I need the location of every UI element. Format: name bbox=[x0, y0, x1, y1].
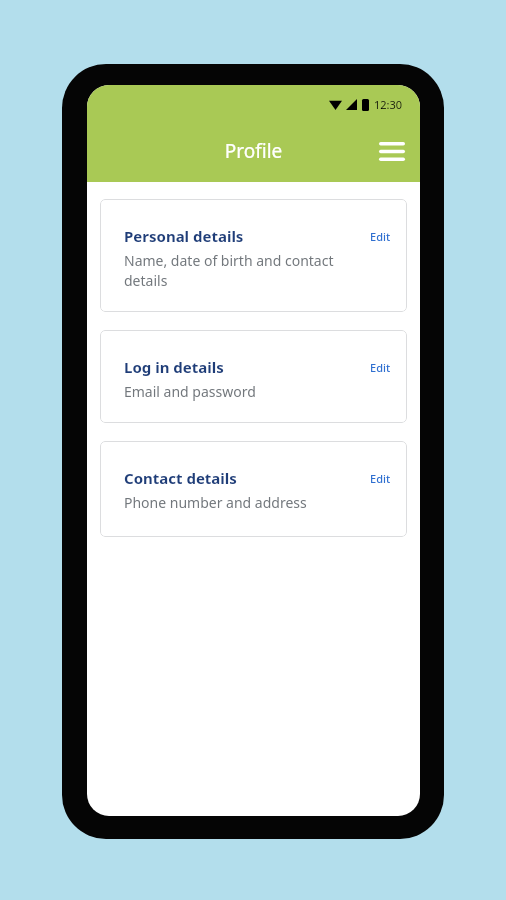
staticText: Edit bbox=[370, 360, 391, 375]
staticText: Phone number and address bbox=[124, 493, 391, 512]
staticText: Personal details bbox=[124, 226, 370, 246]
staticText: Profile bbox=[87, 138, 420, 164]
staticText: Edit bbox=[370, 229, 391, 244]
button[interactable]: Contact details bbox=[100, 441, 407, 537]
staticText: Edit bbox=[370, 471, 391, 486]
staticText: Name, date of birth and contact details bbox=[124, 251, 338, 290]
button[interactable]: Personal details bbox=[100, 199, 407, 312]
staticText: Log in details bbox=[124, 357, 370, 377]
staticText: Email and password bbox=[124, 382, 391, 401]
button[interactable]: Log in details bbox=[100, 330, 407, 423]
button[interactable]: Open navigation menu bbox=[370, 129, 414, 173]
staticText: Contact details bbox=[124, 468, 370, 488]
staticText: 12:30 bbox=[374, 97, 403, 112]
